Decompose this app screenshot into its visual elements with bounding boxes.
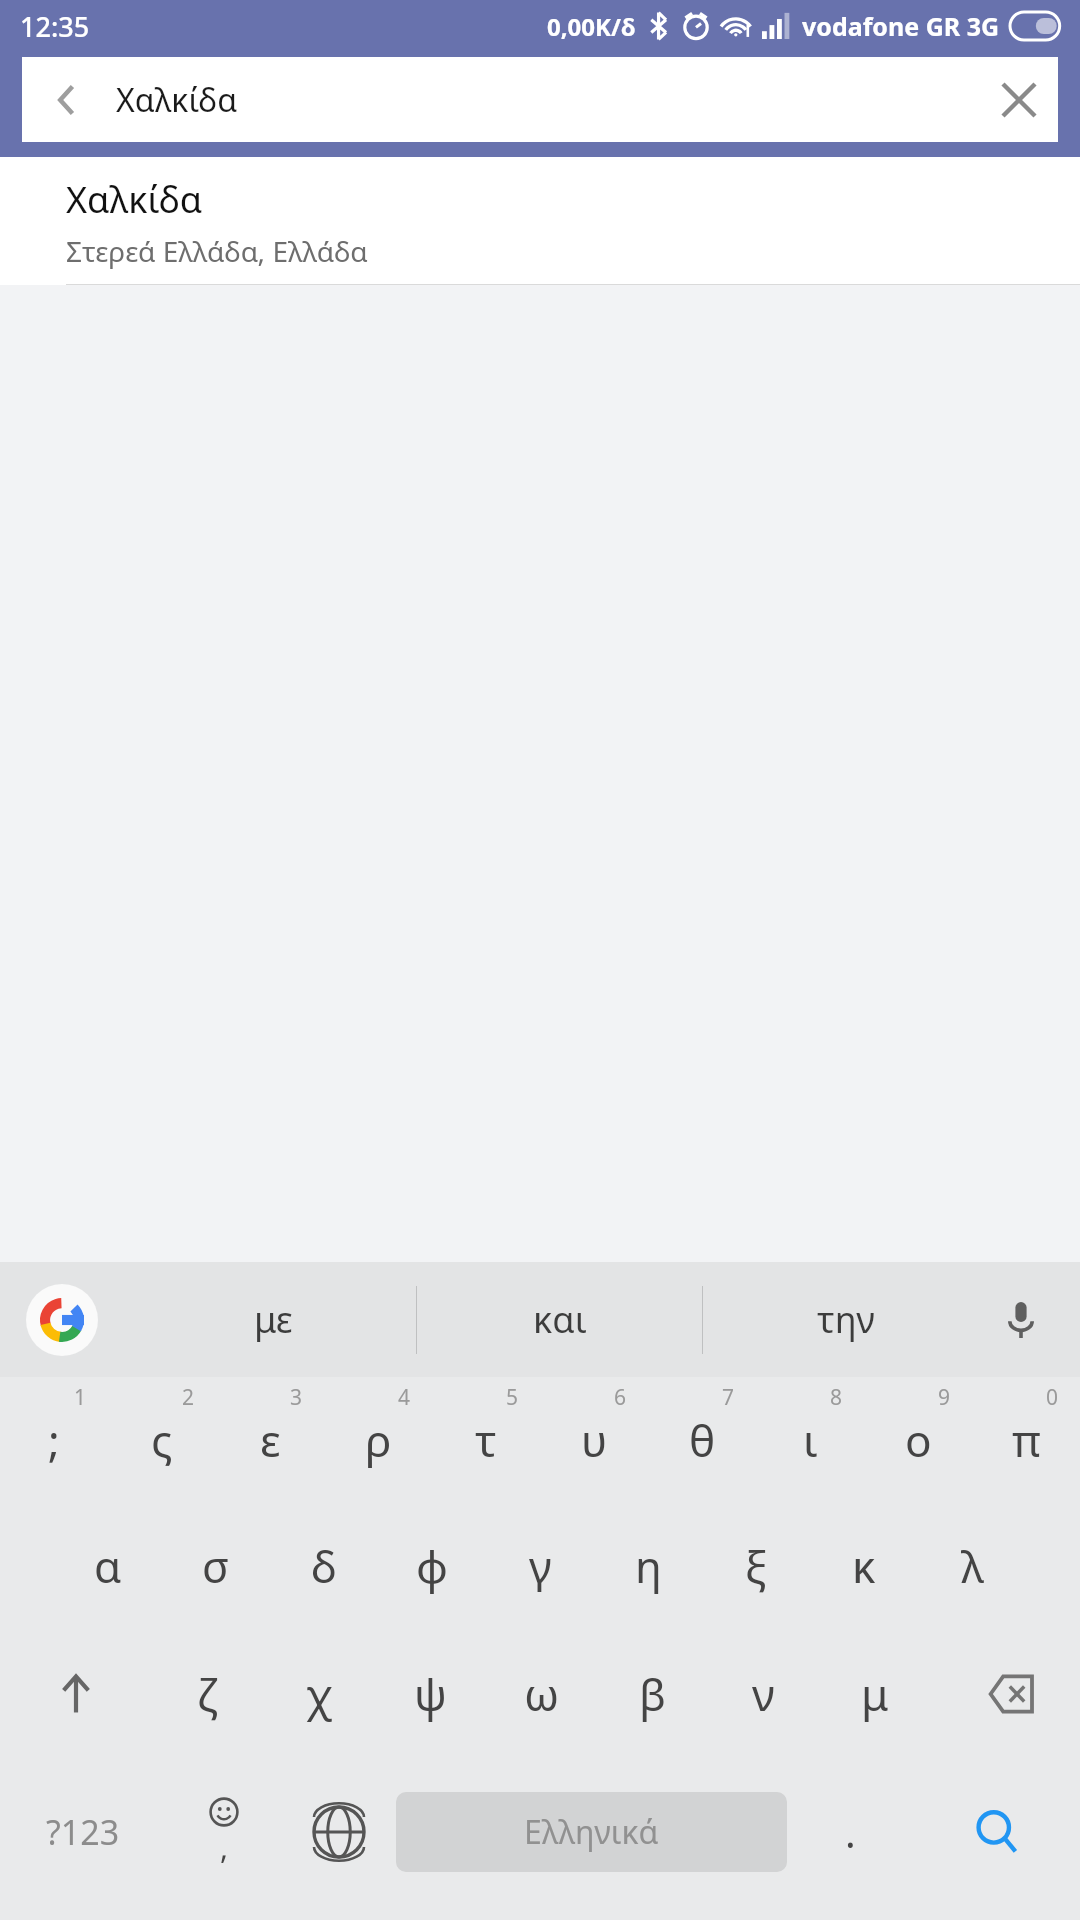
button[interactable]: Χαλκίδα bbox=[0, 157, 1080, 285]
staticText: β bbox=[639, 1664, 666, 1724]
staticText: 9 bbox=[938, 1383, 951, 1412]
staticText: α bbox=[94, 1536, 122, 1596]
button[interactable]: Emoji bbox=[166, 1758, 281, 1906]
button[interactable]: η bbox=[594, 1502, 702, 1630]
staticText: Χαλκίδα bbox=[116, 78, 238, 122]
staticText: ω bbox=[524, 1664, 560, 1724]
staticText: Χαλκίδα bbox=[66, 175, 203, 224]
staticText: 5 bbox=[506, 1383, 519, 1412]
button[interactable]: και bbox=[417, 1262, 702, 1377]
button[interactable]: Search bbox=[913, 1758, 1080, 1906]
staticText: η bbox=[635, 1536, 662, 1596]
staticText: χ bbox=[306, 1664, 333, 1724]
staticText: τ bbox=[475, 1410, 497, 1470]
button[interactable]: φ bbox=[378, 1502, 486, 1630]
staticText: κ bbox=[852, 1536, 876, 1596]
button[interactable]: Back bbox=[32, 65, 102, 135]
staticText: 4 bbox=[398, 1383, 411, 1412]
staticText: γ bbox=[529, 1536, 552, 1596]
staticText: ρ bbox=[365, 1410, 392, 1470]
staticText: ε bbox=[260, 1410, 281, 1470]
staticText: 0,00K/δ bbox=[547, 10, 636, 43]
staticText: 6 bbox=[614, 1383, 627, 1412]
staticText: και bbox=[533, 1295, 587, 1344]
staticText: λ bbox=[961, 1536, 984, 1596]
button[interactable]: σ bbox=[162, 1502, 270, 1630]
staticText: , bbox=[220, 1827, 229, 1868]
button[interactable]: ς bbox=[108, 1377, 216, 1502]
staticText: 3 bbox=[290, 1383, 303, 1412]
staticText: δ bbox=[311, 1536, 337, 1596]
button[interactable]: υ bbox=[540, 1377, 648, 1502]
staticText: ς bbox=[151, 1410, 173, 1470]
staticText: την bbox=[817, 1295, 875, 1344]
button[interactable]: π bbox=[972, 1377, 1080, 1502]
staticText: θ bbox=[689, 1410, 716, 1470]
staticText: 8 bbox=[830, 1383, 843, 1412]
button[interactable]: ξ bbox=[702, 1502, 810, 1630]
staticText: 1 bbox=[74, 1383, 87, 1412]
button[interactable]: λ bbox=[918, 1502, 1026, 1630]
button[interactable]: ψ bbox=[375, 1630, 486, 1758]
button[interactable]: Ελληνικά bbox=[396, 1792, 787, 1872]
button[interactable]: Clear bbox=[980, 61, 1058, 139]
staticText: ν bbox=[752, 1664, 775, 1724]
button[interactable]: ν bbox=[708, 1630, 819, 1758]
button[interactable]: ζ bbox=[151, 1630, 263, 1758]
staticText: Στερεά Ελλάδα, Ελλάδα bbox=[66, 232, 368, 270]
button[interactable]: ι bbox=[756, 1377, 864, 1502]
staticText: ξ bbox=[745, 1536, 767, 1596]
staticText: σ bbox=[202, 1536, 230, 1596]
button[interactable]: α bbox=[54, 1502, 162, 1630]
button[interactable]: Back bbox=[22, 57, 1058, 142]
button[interactable]: κ bbox=[810, 1502, 918, 1630]
button[interactable]: ω bbox=[486, 1630, 597, 1758]
button[interactable]: β bbox=[597, 1630, 708, 1758]
button[interactable]: θ bbox=[648, 1377, 756, 1502]
button[interactable]: ?123 bbox=[0, 1758, 166, 1906]
button[interactable]: Change language bbox=[281, 1758, 396, 1906]
staticText: φ bbox=[416, 1536, 448, 1596]
button[interactable]: δ bbox=[270, 1502, 378, 1630]
staticText: 0 bbox=[1046, 1383, 1059, 1412]
staticText: ; bbox=[48, 1410, 60, 1470]
button[interactable]: τ bbox=[432, 1377, 540, 1502]
staticText: ι bbox=[803, 1410, 818, 1470]
button[interactable]: την bbox=[703, 1262, 988, 1377]
staticText: ψ bbox=[414, 1664, 447, 1724]
button[interactable]: με bbox=[130, 1262, 416, 1377]
button[interactable]: γ bbox=[486, 1502, 594, 1630]
staticText: ζ bbox=[197, 1664, 218, 1724]
staticText: 12:35 bbox=[20, 8, 90, 45]
staticText: π bbox=[1012, 1410, 1041, 1470]
staticText: μ bbox=[861, 1664, 889, 1724]
button[interactable]: Shift bbox=[0, 1630, 151, 1758]
staticText: υ bbox=[581, 1410, 608, 1470]
staticText: 7 bbox=[722, 1383, 735, 1412]
button[interactable]: μ bbox=[819, 1630, 930, 1758]
staticText: ο bbox=[905, 1410, 932, 1470]
button[interactable]: Google bbox=[26, 1284, 98, 1356]
button[interactable]: Backspace bbox=[930, 1630, 1080, 1758]
staticText: Ελληνικά bbox=[524, 1810, 659, 1854]
staticText: vodafone GR 3G bbox=[802, 9, 1000, 43]
button[interactable]: ο bbox=[864, 1377, 972, 1502]
staticText: 2 bbox=[182, 1383, 195, 1412]
staticText: . bbox=[845, 1805, 856, 1859]
button[interactable]: ; bbox=[0, 1377, 108, 1502]
button[interactable]: ρ bbox=[324, 1377, 432, 1502]
button[interactable]: ε bbox=[216, 1377, 324, 1502]
button[interactable]: . bbox=[787, 1758, 913, 1906]
button[interactable]: Voice input bbox=[986, 1285, 1056, 1355]
staticText: ?123 bbox=[46, 1809, 120, 1855]
button[interactable]: χ bbox=[263, 1630, 375, 1758]
staticText: με bbox=[254, 1295, 293, 1344]
